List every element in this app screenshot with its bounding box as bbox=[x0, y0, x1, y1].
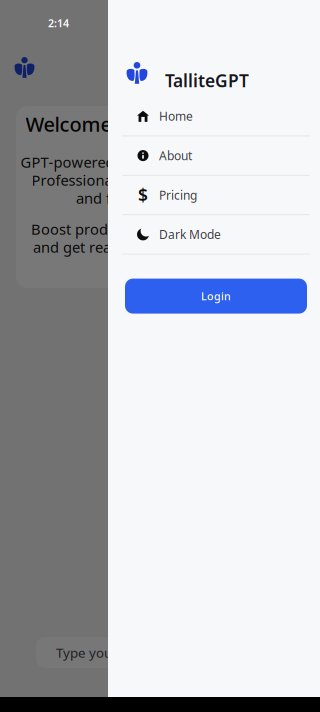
button[interactable]: $ bbox=[108, 176, 320, 215]
staticText: $ bbox=[138, 183, 148, 206]
staticText: Boost productivity, save time bbox=[31, 219, 229, 239]
button[interactable]: About bbox=[108, 136, 320, 176]
staticText: Type your message... bbox=[56, 644, 188, 661]
staticText: About bbox=[159, 148, 192, 163]
button[interactable]: Login bbox=[108, 255, 320, 314]
staticText: and for anyone. bbox=[76, 188, 184, 208]
staticText: Login bbox=[201, 289, 231, 303]
staticText: and get ready for the future. bbox=[33, 237, 227, 257]
staticText: Professionals, for Tallit users bbox=[31, 170, 228, 190]
staticText: Dark Mode bbox=[159, 226, 221, 242]
staticText: Welcome to TalliteGPT bbox=[25, 111, 234, 137]
button[interactable]: Dark Mode bbox=[108, 215, 320, 255]
staticText: Pricing bbox=[159, 187, 197, 203]
staticText: TalliteGPT bbox=[165, 69, 249, 92]
staticText: Home bbox=[159, 108, 193, 124]
button[interactable]: Home bbox=[108, 97, 320, 136]
staticText: 2:14 bbox=[48, 16, 69, 30]
staticText: GPT-powered Assistant for Tallit bbox=[20, 152, 239, 172]
